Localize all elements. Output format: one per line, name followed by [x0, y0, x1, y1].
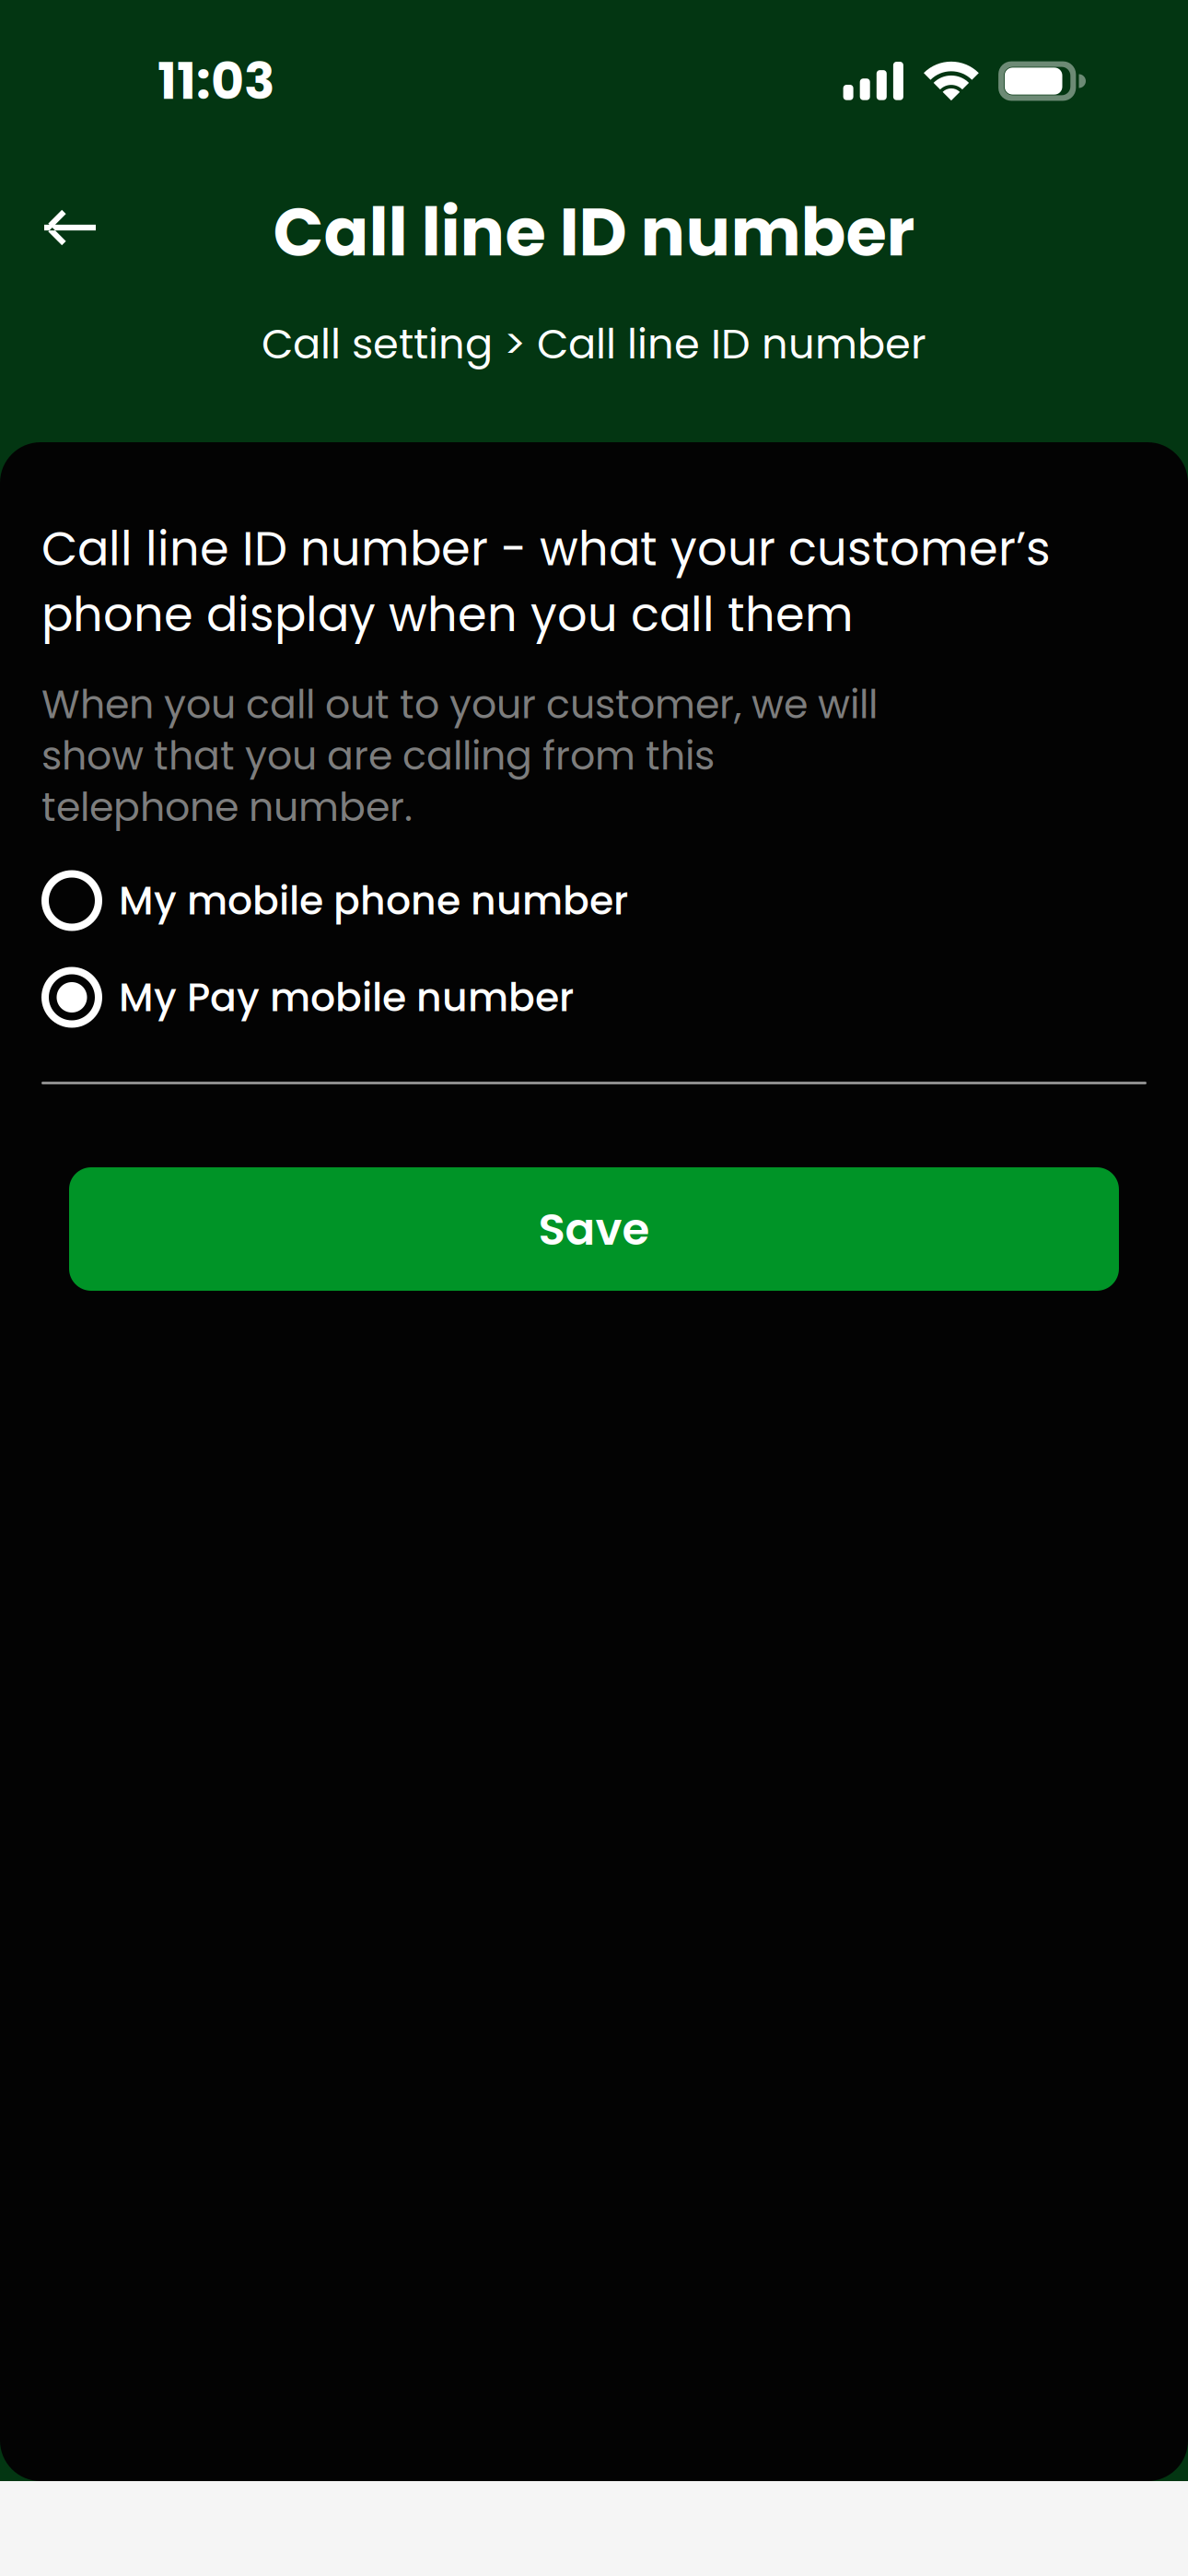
staticText: Call line ID number - what your customer… [41, 516, 1051, 648]
staticText: Call setting > Call line ID number [262, 315, 926, 373]
staticText: When you call out to your customer, we w… [41, 677, 878, 835]
button[interactable]: Save [69, 1167, 1119, 1291]
staticText: My mobile phone number [119, 873, 628, 928]
button[interactable]: My mobile phone number [41, 852, 1147, 949]
staticText: Save [538, 1198, 650, 1260]
button[interactable]: My Pay mobile number [41, 949, 1147, 1046]
staticText: My Pay mobile number [119, 970, 574, 1025]
staticText: 11:03 [157, 45, 274, 117]
button[interactable]: Back [0, 196, 134, 268]
staticText: Call line ID number [273, 186, 915, 279]
